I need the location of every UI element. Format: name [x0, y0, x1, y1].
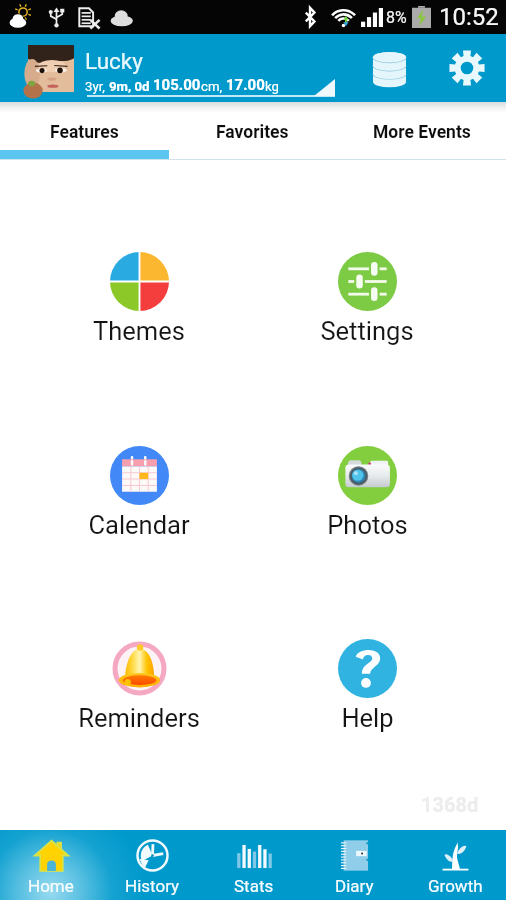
- button[interactable]: Calendar: [34, 446, 244, 556]
- staticText: 17.00: [226, 76, 265, 94]
- staticText: 105.00: [153, 76, 201, 94]
- staticText: 9m, 0d: [109, 79, 153, 94]
- staticText: Themes: [93, 316, 185, 346]
- button[interactable]: Photos: [262, 446, 472, 556]
- button[interactable]: Diary: [304, 830, 405, 900]
- button[interactable]: Growth: [405, 830, 506, 900]
- staticText: Settings: [320, 316, 414, 346]
- button[interactable]: Stats: [203, 830, 304, 900]
- button[interactable]: History: [102, 830, 203, 900]
- button[interactable]: Favorites: [168, 113, 337, 150]
- staticText: More Events: [373, 122, 471, 143]
- staticText: kg: [265, 79, 279, 94]
- button[interactable]: Settings: [262, 252, 472, 362]
- button[interactable]: Database: [342, 34, 436, 102]
- button[interactable]: Reminders: [34, 639, 244, 749]
- button[interactable]: Home: [0, 830, 102, 900]
- staticText: 8%: [386, 8, 407, 27]
- staticText: 3yr,: [85, 79, 109, 94]
- staticText: Stats: [234, 876, 274, 896]
- button[interactable]: More Events: [337, 113, 506, 150]
- staticText: Favorites: [216, 122, 289, 143]
- button[interactable]: Settings: [436, 34, 498, 102]
- button[interactable]: Features: [0, 113, 168, 150]
- staticText: Calendar: [88, 510, 190, 540]
- staticText: Home: [28, 876, 74, 896]
- staticText: cm,: [201, 79, 226, 94]
- button[interactable]: Lucky: [0, 34, 506, 102]
- staticText: Diary: [335, 876, 374, 896]
- staticText: Photos: [327, 510, 408, 540]
- staticText: 1368d: [421, 793, 479, 816]
- staticText: 10:52: [439, 3, 499, 31]
- staticText: Features: [50, 122, 119, 143]
- staticText: Reminders: [78, 703, 200, 733]
- staticText: Growth: [428, 876, 483, 896]
- staticText: Help: [341, 703, 394, 733]
- button[interactable]: Themes: [34, 252, 244, 362]
- button[interactable]: Help: [262, 639, 472, 749]
- staticText: History: [125, 876, 180, 896]
- staticText: Lucky: [85, 48, 143, 74]
